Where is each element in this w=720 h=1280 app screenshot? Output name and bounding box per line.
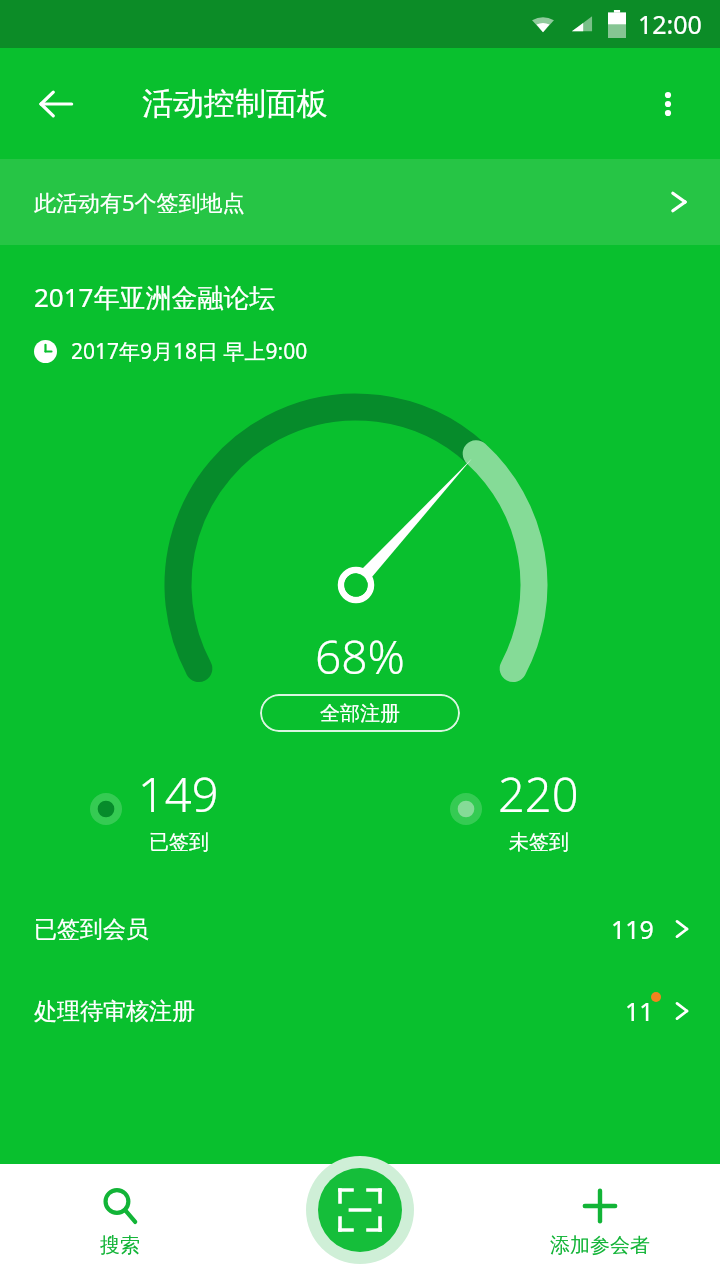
button[interactable]: 149 <box>0 762 360 855</box>
button[interactable]: 处理待审核注册 <box>0 983 720 1039</box>
button[interactable]: 220 <box>360 762 720 855</box>
button[interactable]: More options <box>640 76 696 132</box>
staticText: 处理待审核注册 <box>34 997 195 1026</box>
staticText: 未签到 <box>509 830 569 855</box>
staticText: 2017年亚洲金融论坛 <box>34 279 276 315</box>
staticText: 已签到 <box>149 830 209 855</box>
button[interactable]: 全部注册 <box>260 694 460 732</box>
staticText: 此活动有5个签到地点 <box>34 187 245 217</box>
staticText: 68% <box>315 625 405 688</box>
button[interactable]: 已签到会员 <box>0 901 720 957</box>
staticText: 添加参会者 <box>550 1233 650 1258</box>
button[interactable]: 此活动有5个签到地点 <box>0 159 720 245</box>
staticText: 12:00 <box>638 7 702 41</box>
button[interactable]: 添加参会者 <box>480 1164 720 1280</box>
staticText: 119 <box>611 912 654 946</box>
button[interactable]: 搜索 <box>0 1164 240 1280</box>
staticText: 149 <box>138 762 219 826</box>
staticText: 活动控制面板 <box>142 84 328 123</box>
staticText: 已签到会员 <box>34 915 149 944</box>
button[interactable]: Scan code <box>306 1156 414 1264</box>
staticText: 11 <box>625 994 654 1028</box>
staticText: 2017年9月18日 早上9:00 <box>71 337 308 366</box>
staticText: 220 <box>498 762 579 826</box>
staticText: 搜索 <box>100 1233 140 1258</box>
button[interactable]: Back <box>26 74 86 134</box>
staticText: 全部注册 <box>320 701 400 726</box>
